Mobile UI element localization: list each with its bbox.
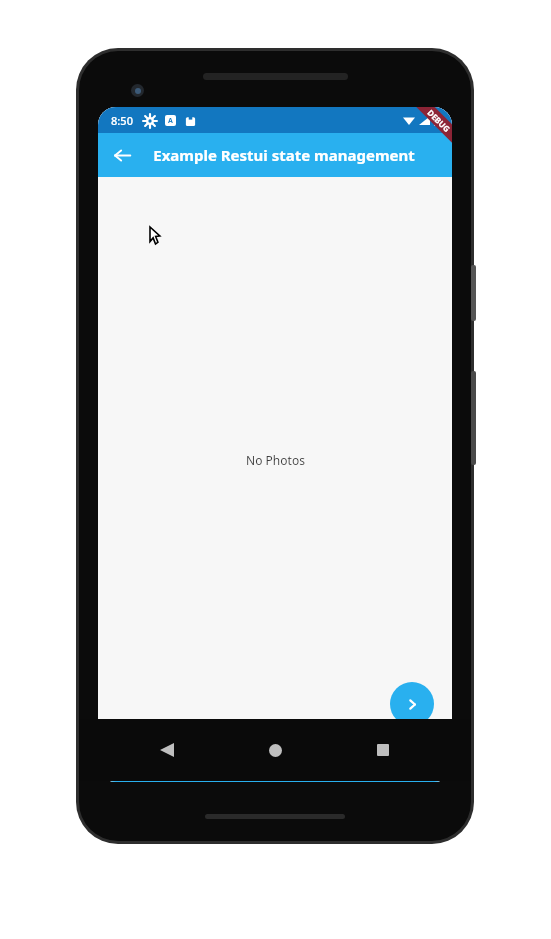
button[interactable]: 4 xyxy=(363,742,452,782)
button[interactable]: 2 xyxy=(186,742,274,782)
button[interactable]: Back xyxy=(104,137,140,173)
staticText: A xyxy=(168,116,173,126)
staticText: Example Restui state management xyxy=(153,145,415,165)
button[interactable]: Home xyxy=(255,730,295,770)
staticText: No Photos xyxy=(246,452,305,468)
button[interactable]: 1 xyxy=(98,742,186,782)
staticText: DEBUG xyxy=(425,107,452,134)
button[interactable]: 3 xyxy=(274,742,363,782)
staticText: 8:50 xyxy=(111,113,133,128)
button[interactable]: Back xyxy=(147,730,187,770)
button[interactable]: Next xyxy=(390,682,434,726)
button[interactable]: Recent apps xyxy=(363,730,403,770)
